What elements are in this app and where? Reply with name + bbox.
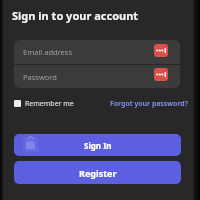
staticText: Register bbox=[79, 167, 117, 179]
staticText: Email address bbox=[23, 47, 73, 57]
staticText: Remember me bbox=[25, 99, 74, 109]
button[interactable]: Sign In bbox=[14, 134, 181, 156]
button[interactable]: Email address bbox=[14, 40, 180, 64]
button[interactable]: Password bbox=[14, 65, 180, 88]
button[interactable] bbox=[154, 68, 168, 81]
staticText: Password bbox=[23, 72, 57, 82]
staticText: Sign in to your account bbox=[12, 8, 139, 23]
button[interactable] bbox=[154, 44, 168, 57]
button[interactable]: Register bbox=[14, 161, 181, 184]
button[interactable]: Forgot your password? bbox=[110, 99, 188, 109]
staticText: Sign In bbox=[84, 140, 112, 151]
button[interactable] bbox=[14, 100, 21, 107]
